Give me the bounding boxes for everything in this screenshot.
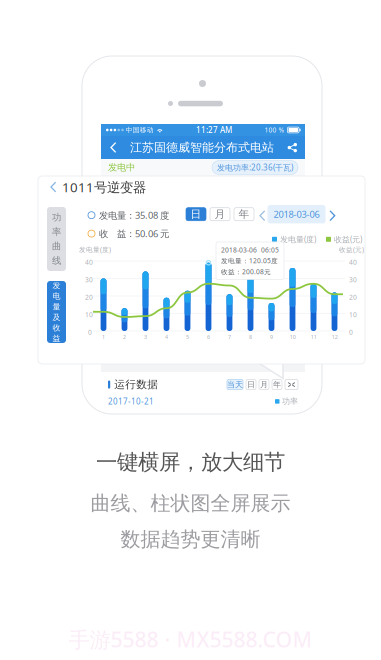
staticText: 中国移动 <box>126 126 154 134</box>
staticText: 发 <box>52 281 60 291</box>
staticText: 0 <box>349 328 353 337</box>
staticText: 曲 <box>52 240 61 252</box>
staticText: 手游5588 · MX5588.COM <box>68 625 312 653</box>
staticText: 9 <box>270 333 273 341</box>
staticText: 月 <box>214 208 225 221</box>
staticText: 发电量：35.08 度 <box>99 209 169 221</box>
staticText: 4 <box>165 333 168 341</box>
staticText: 20 <box>85 293 93 302</box>
staticText: 6 <box>207 333 210 341</box>
staticText: 2018-03-06 06:05 <box>221 245 279 254</box>
staticText: 江苏固德威智能分布式电站 <box>130 140 274 155</box>
button[interactable]: 日 <box>186 208 206 221</box>
staticText: 功率 <box>282 396 298 406</box>
staticText: 益 <box>52 333 60 343</box>
staticText: 11 <box>311 333 317 341</box>
staticText: 11:27 AM <box>196 125 232 135</box>
staticText: 2 <box>123 333 126 341</box>
button[interactable]: 月 <box>259 380 269 390</box>
staticText: 30 <box>349 275 357 284</box>
staticText: 12 <box>332 333 338 341</box>
staticText: 收益(元) <box>339 245 364 254</box>
staticText: 40 <box>85 258 93 267</box>
button[interactable]: 1011号逆变器 <box>38 176 365 198</box>
button[interactable]: 日 <box>246 380 256 390</box>
button[interactable]: 发 <box>47 281 66 343</box>
staticText: 线 <box>52 255 61 266</box>
button[interactable]: 返回 <box>103 137 122 157</box>
staticText: 5 <box>186 333 189 341</box>
staticText: 发电量(度) <box>79 245 111 254</box>
staticText: 发电功率:20.36(千瓦) <box>217 162 293 173</box>
staticText: 20 <box>349 293 357 302</box>
staticText: 10 <box>85 310 93 319</box>
staticText: 年 <box>238 208 249 221</box>
staticText: 1011号逆变器 <box>62 178 146 196</box>
staticText: 率 <box>52 226 61 237</box>
staticText: 收益：200.08元 <box>221 267 271 276</box>
button[interactable]: 下一天 <box>325 208 339 221</box>
staticText: 发电量：120.05度 <box>221 256 278 265</box>
staticText: 3 <box>144 333 147 341</box>
staticText: 运行数据 <box>114 378 158 391</box>
staticText: 10 <box>349 310 357 319</box>
staticText: 一键横屏，放大细节 <box>96 449 285 475</box>
staticText: 2018-03-06 <box>273 208 319 220</box>
staticText: 7 <box>228 333 231 341</box>
staticText: 1 <box>102 333 105 341</box>
staticText: 月 <box>260 380 268 389</box>
staticText: 2017-10-21 <box>108 396 154 407</box>
button[interactable]: 全屏 <box>285 380 298 390</box>
button[interactable]: 上一天 <box>254 208 267 221</box>
staticText: 当天 <box>227 380 243 389</box>
button[interactable]: 月 <box>210 208 230 221</box>
staticText: 日 <box>190 208 201 221</box>
staticText: 10 <box>290 333 296 341</box>
staticText: 收 益：50.06 元 <box>99 227 169 240</box>
staticText: 30 <box>85 275 93 284</box>
button[interactable]: 年 <box>234 208 254 221</box>
staticText: 100 % <box>264 126 284 134</box>
staticText: 年 <box>273 380 281 389</box>
staticText: 数据趋势更清晰 <box>120 527 260 552</box>
staticText: 量 <box>52 302 60 312</box>
staticText: 收 <box>52 323 60 333</box>
staticText: 电 <box>52 291 60 301</box>
button[interactable]: 功 <box>47 207 66 271</box>
staticText: 40 <box>349 258 357 267</box>
button[interactable]: 当天 <box>227 380 243 390</box>
staticText: 曲线、柱状图全屏展示 <box>90 491 290 516</box>
button[interactable]: 分享 <box>282 138 303 157</box>
staticText: 收益(元) <box>334 234 362 245</box>
button[interactable]: 年 <box>272 380 282 390</box>
staticText: 0 <box>88 328 92 337</box>
staticText: 8 <box>249 333 252 341</box>
staticText: 发电中 <box>108 162 135 173</box>
staticText: 发电量(度) <box>280 234 316 245</box>
staticText: 日 <box>247 380 255 389</box>
staticText: 及 <box>52 312 60 322</box>
staticText: 功 <box>52 212 61 223</box>
